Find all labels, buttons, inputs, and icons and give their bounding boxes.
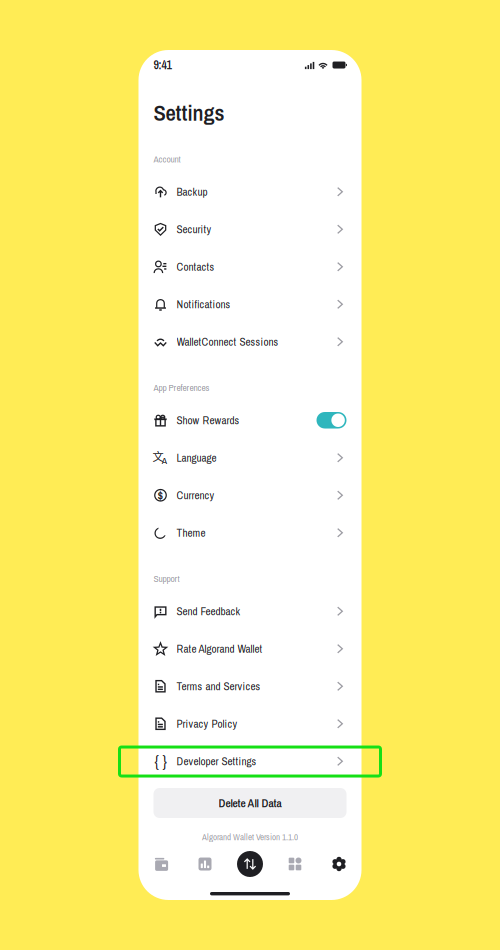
staticText: App Preferences <box>153 381 209 394</box>
button[interactable]: Privacy Policy <box>138 705 361 742</box>
button[interactable]: Accounts <box>139 847 183 881</box>
staticText: Privacy Policy <box>176 716 237 731</box>
staticText: Language <box>176 450 216 465</box>
staticText: Terms and Services <box>176 679 260 694</box>
button[interactable]: $ <box>138 476 361 514</box>
button[interactable]: Portfolio <box>183 847 227 881</box>
button[interactable]: Settings <box>317 847 361 881</box>
staticText: Rate Algorand Wallet <box>176 641 262 656</box>
staticText: Notifications <box>176 297 230 312</box>
button[interactable]: Contacts <box>138 248 361 285</box>
staticText: Backup <box>176 184 207 199</box>
button[interactable]: WalletConnect Sessions <box>138 323 361 360</box>
button[interactable]: Notifications <box>138 285 361 323</box>
staticText: Send Feedback <box>176 604 240 619</box>
staticText: Support <box>153 572 179 585</box>
staticText: $ <box>157 487 163 504</box>
button[interactable]: Send and receive <box>227 847 273 881</box>
staticText: 9:41 <box>153 57 171 73</box>
button[interactable]: 文 <box>138 439 361 476</box>
staticText: Settings <box>153 97 224 128</box>
staticText: Currency <box>176 488 214 503</box>
button[interactable]: Security <box>138 210 361 248</box>
button[interactable]: Terms and Services <box>138 667 361 705</box>
staticText: Theme <box>176 525 205 540</box>
button[interactable]: Rate Algorand Wallet <box>138 630 361 667</box>
button[interactable]: Send Feedback <box>138 592 361 630</box>
staticText: WalletConnect Sessions <box>176 334 278 349</box>
button[interactable]: Theme <box>138 514 361 551</box>
staticText: 文 <box>153 448 164 464</box>
staticText: Contacts <box>176 259 214 274</box>
button[interactable]: Show Rewards <box>138 401 361 439</box>
staticText: Security <box>176 222 211 237</box>
button[interactable]: Discover <box>273 847 317 881</box>
staticText: Delete All Data <box>218 795 281 811</box>
staticText: Developer Settings <box>176 754 256 769</box>
staticText: Account <box>153 153 180 165</box>
staticText: Show Rewards <box>176 413 239 428</box>
button[interactable]: Delete All Data <box>153 788 346 818</box>
button[interactable]: Backup <box>138 173 361 210</box>
staticText: A <box>162 454 167 467</box>
staticText: { } <box>154 751 166 772</box>
staticText: Algorand Wallet Version 1.1.0 <box>202 831 298 843</box>
button[interactable]: { } <box>138 742 361 780</box>
